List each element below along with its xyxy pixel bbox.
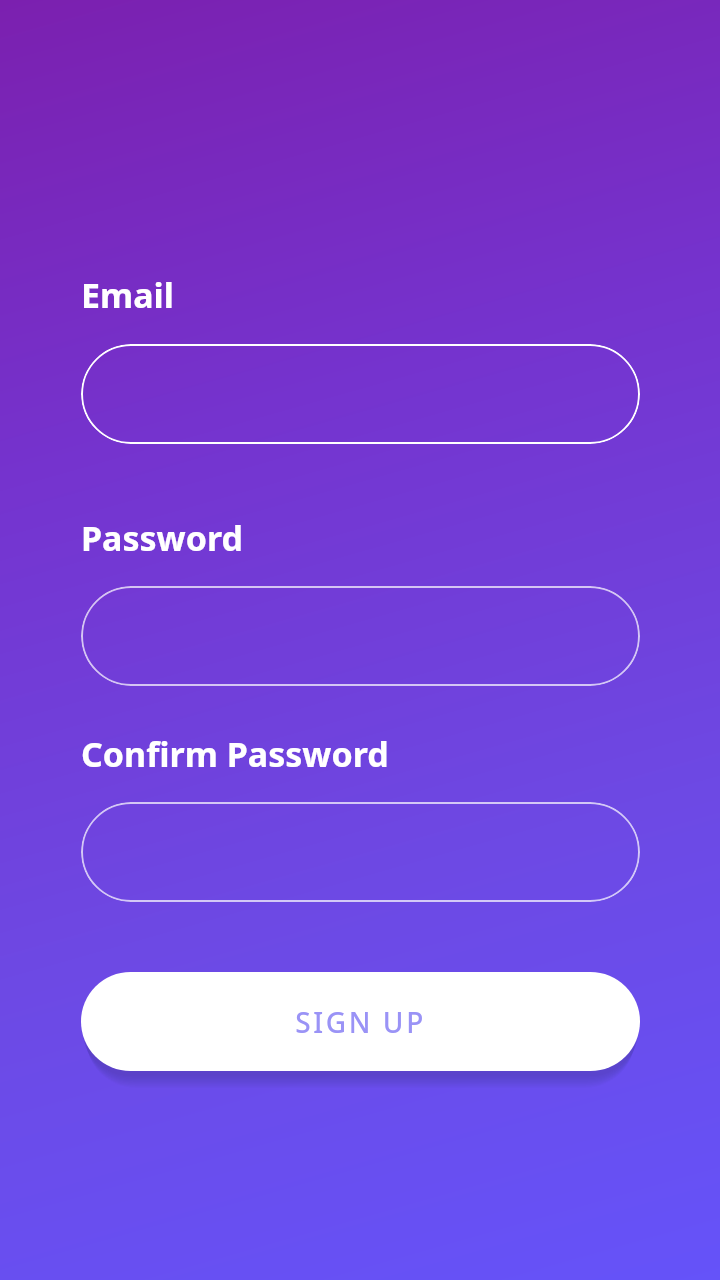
button[interactable]: Confirm password input field xyxy=(81,802,640,902)
staticText: Password xyxy=(81,515,243,561)
staticText: Confirm Password xyxy=(81,731,389,777)
staticText: Email xyxy=(81,272,174,318)
button[interactable]: SIGN UP xyxy=(81,972,640,1071)
button[interactable]: Password input field xyxy=(81,586,640,686)
staticText: SIGN UP xyxy=(295,1003,426,1041)
button[interactable]: Email input field xyxy=(81,344,640,444)
